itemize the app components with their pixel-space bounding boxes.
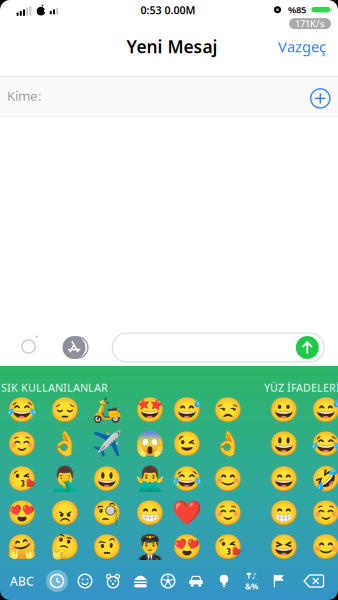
button[interactable]: Emoji: [171, 533, 201, 561]
staticText: 😂: [311, 430, 338, 458]
button[interactable]: Food: [132, 573, 148, 589]
button[interactable]: Activities: [160, 573, 176, 589]
staticText: ₸♪: [246, 570, 256, 581]
button[interactable]: Emoji: [7, 430, 37, 458]
staticText: 😃: [269, 430, 299, 458]
button[interactable]: Emoji: [171, 396, 201, 424]
button[interactable]: Emoji: [213, 465, 243, 492]
button[interactable]: Emoji: [311, 396, 338, 424]
button[interactable]: Emoji: [311, 533, 338, 561]
button[interactable]: Add Contact: [309, 87, 331, 109]
button[interactable]: Emoji: [311, 499, 338, 526]
button[interactable]: Emoji: [92, 396, 122, 424]
staticText: 😊: [213, 465, 243, 492]
button[interactable]: Emoji: [7, 465, 37, 492]
button[interactable]: ABC: [10, 573, 34, 589]
button[interactable]: Camera: [20, 335, 40, 356]
button[interactable]: Emoji: [213, 430, 243, 458]
button[interactable]: Flags: [271, 573, 287, 589]
staticText: 171K/s: [295, 17, 325, 30]
staticText: 😘: [213, 533, 243, 561]
button[interactable]: Emoji: [92, 499, 122, 526]
staticText: 🤨: [92, 533, 122, 561]
button[interactable]: Emoji: [134, 430, 164, 458]
staticText: 😠: [49, 499, 79, 526]
button[interactable]: Emoji: [49, 465, 79, 492]
button[interactable]: Emoji: [171, 465, 201, 492]
staticText: 😂: [7, 396, 37, 424]
staticText: 🛵: [92, 396, 122, 424]
button[interactable]: Smileys: [77, 573, 93, 589]
button[interactable]: Apps: [62, 336, 90, 359]
button[interactable]: Symbols: [245, 570, 258, 592]
button[interactable]: Objects: [216, 573, 232, 589]
button[interactable]: Emoji: [92, 533, 122, 561]
button[interactable]: Emoji: [92, 465, 122, 492]
button[interactable]: Frequently Used: [46, 570, 68, 592]
staticText: 🤗: [7, 533, 37, 561]
staticText: 😅: [171, 396, 201, 424]
button[interactable]: Emoji: [269, 396, 299, 424]
button[interactable]: Emoji: [7, 499, 37, 526]
button[interactable]: Emoji: [171, 430, 201, 458]
staticText: 😆: [269, 533, 299, 561]
staticText: 😊: [311, 533, 338, 561]
button[interactable]: Emoji: [134, 499, 164, 526]
staticText: 🤣: [311, 465, 338, 492]
staticText: 🤔: [49, 533, 79, 561]
staticText: SIK KULLANILANLAR: [1, 380, 108, 395]
button[interactable]: Delete: [302, 573, 325, 588]
staticText: 🤦‍♂️: [49, 465, 79, 492]
staticText: 👌: [49, 430, 79, 458]
button[interactable]: Emoji: [269, 533, 299, 561]
staticText: 👨‍✈️: [134, 533, 164, 561]
button[interactable]: Vazgeç: [278, 37, 326, 56]
button[interactable]: Animals: [105, 573, 121, 589]
staticText: 👌: [213, 430, 243, 458]
staticText: ☺️: [213, 499, 243, 526]
button[interactable]: Emoji: [213, 533, 243, 561]
staticText: YÜZ İFADELERİ: [264, 380, 338, 395]
button[interactable]: Emoji: [49, 533, 79, 561]
staticText: %85: [288, 3, 306, 16]
staticText: 😃: [92, 465, 122, 492]
button[interactable]: Emoji: [92, 430, 122, 458]
button[interactable]: Emoji: [134, 465, 164, 492]
staticText: ✈️: [92, 430, 122, 458]
button[interactable]: Emoji: [269, 499, 299, 526]
staticText: Kime:: [7, 87, 42, 104]
staticText: 😔: [49, 396, 79, 424]
staticText: 😅: [311, 396, 338, 424]
staticText: 😍: [171, 533, 201, 561]
button[interactable]: Emoji: [213, 499, 243, 526]
staticText: 😂: [171, 465, 201, 492]
button[interactable]: Emoji: [213, 396, 243, 424]
button[interactable]: Emoji: [171, 499, 201, 526]
staticText: 🙅‍♂️: [134, 465, 164, 492]
staticText: ☺️: [7, 430, 37, 458]
button[interactable]: Emoji: [49, 396, 79, 424]
staticText: 🧐: [92, 499, 122, 526]
button[interactable]: Travel: [188, 573, 204, 589]
button[interactable]: Send: [296, 336, 319, 359]
staticText: 😍: [7, 499, 37, 526]
button[interactable]: Emoji: [134, 396, 164, 424]
staticText: 😒: [213, 396, 243, 424]
button[interactable]: Emoji: [7, 533, 37, 561]
staticText: Vazgeç: [278, 37, 326, 56]
staticText: 😉: [171, 430, 201, 458]
button[interactable]: Emoji: [134, 533, 164, 561]
staticText: 😁: [134, 499, 164, 526]
staticText: 😄: [269, 465, 299, 492]
button[interactable]: Emoji: [311, 430, 338, 458]
button[interactable]: Emoji: [49, 499, 79, 526]
button[interactable]: Emoji: [269, 465, 299, 492]
staticText: 0:53 0.00M: [140, 3, 195, 17]
staticText: &%: [245, 581, 258, 592]
button[interactable]: Emoji: [49, 430, 79, 458]
staticText: 🤩: [134, 396, 164, 424]
button[interactable]: Emoji: [269, 430, 299, 458]
button[interactable]: Emoji: [311, 465, 338, 492]
staticText: ABC: [10, 573, 34, 589]
button[interactable]: Emoji: [7, 396, 37, 424]
